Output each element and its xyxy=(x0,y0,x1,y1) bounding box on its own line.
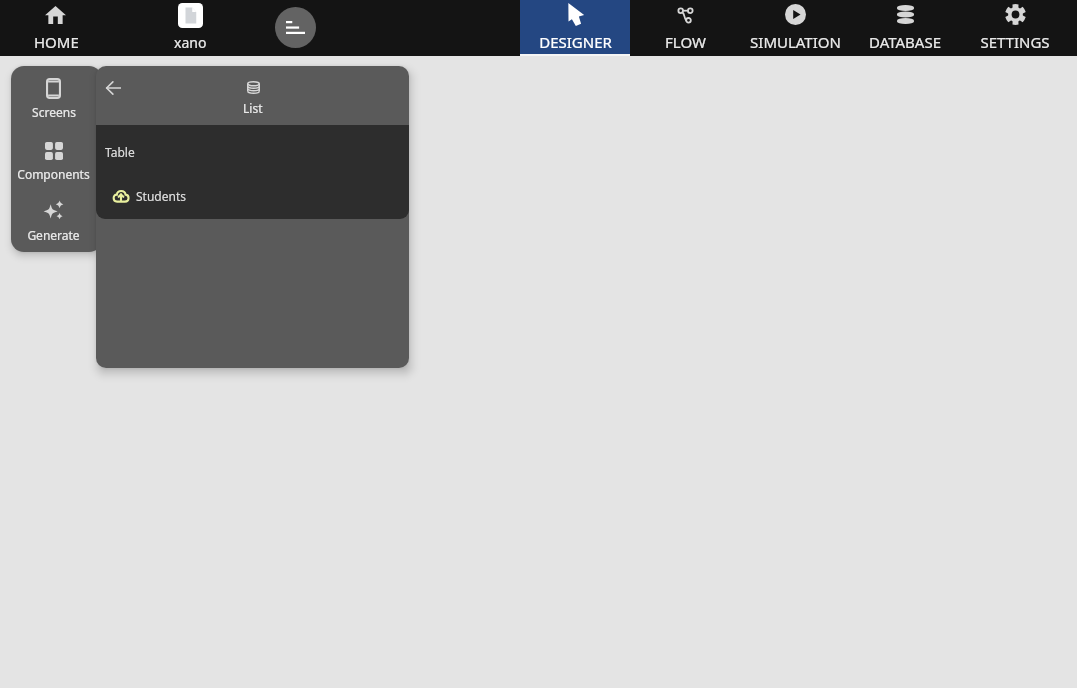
staticText: Screens xyxy=(32,104,76,120)
staticText: xano xyxy=(174,33,207,52)
button[interactable]: DESIGNER xyxy=(520,0,630,56)
button[interactable]: HOME xyxy=(11,0,101,56)
button[interactable]: SETTINGS xyxy=(960,0,1070,56)
button[interactable]: FLOW xyxy=(630,0,740,56)
button[interactable]: Back xyxy=(99,74,127,102)
button[interactable]: Generate xyxy=(11,194,96,246)
button[interactable]: DATABASE xyxy=(850,0,960,56)
button[interactable]: Components xyxy=(11,136,96,188)
staticText: Students xyxy=(136,188,186,204)
staticText: SETTINGS xyxy=(980,32,1050,52)
button[interactable]: List xyxy=(223,74,283,119)
button[interactable]: Students xyxy=(96,183,409,209)
staticText: Table xyxy=(105,144,135,160)
staticText: Components xyxy=(17,166,90,182)
staticText: List xyxy=(243,100,263,116)
button[interactable]: xano xyxy=(145,0,235,56)
button[interactable]: Align left xyxy=(275,7,316,48)
staticText: SIMULATION xyxy=(750,32,841,52)
staticText: FLOW xyxy=(665,32,706,52)
button[interactable]: SIMULATION xyxy=(740,0,850,56)
staticText: DATABASE xyxy=(869,32,941,52)
staticText: Generate xyxy=(27,227,80,243)
button[interactable]: Screens xyxy=(11,72,96,124)
staticText: HOME xyxy=(34,32,79,52)
staticText: DESIGNER xyxy=(539,32,612,52)
